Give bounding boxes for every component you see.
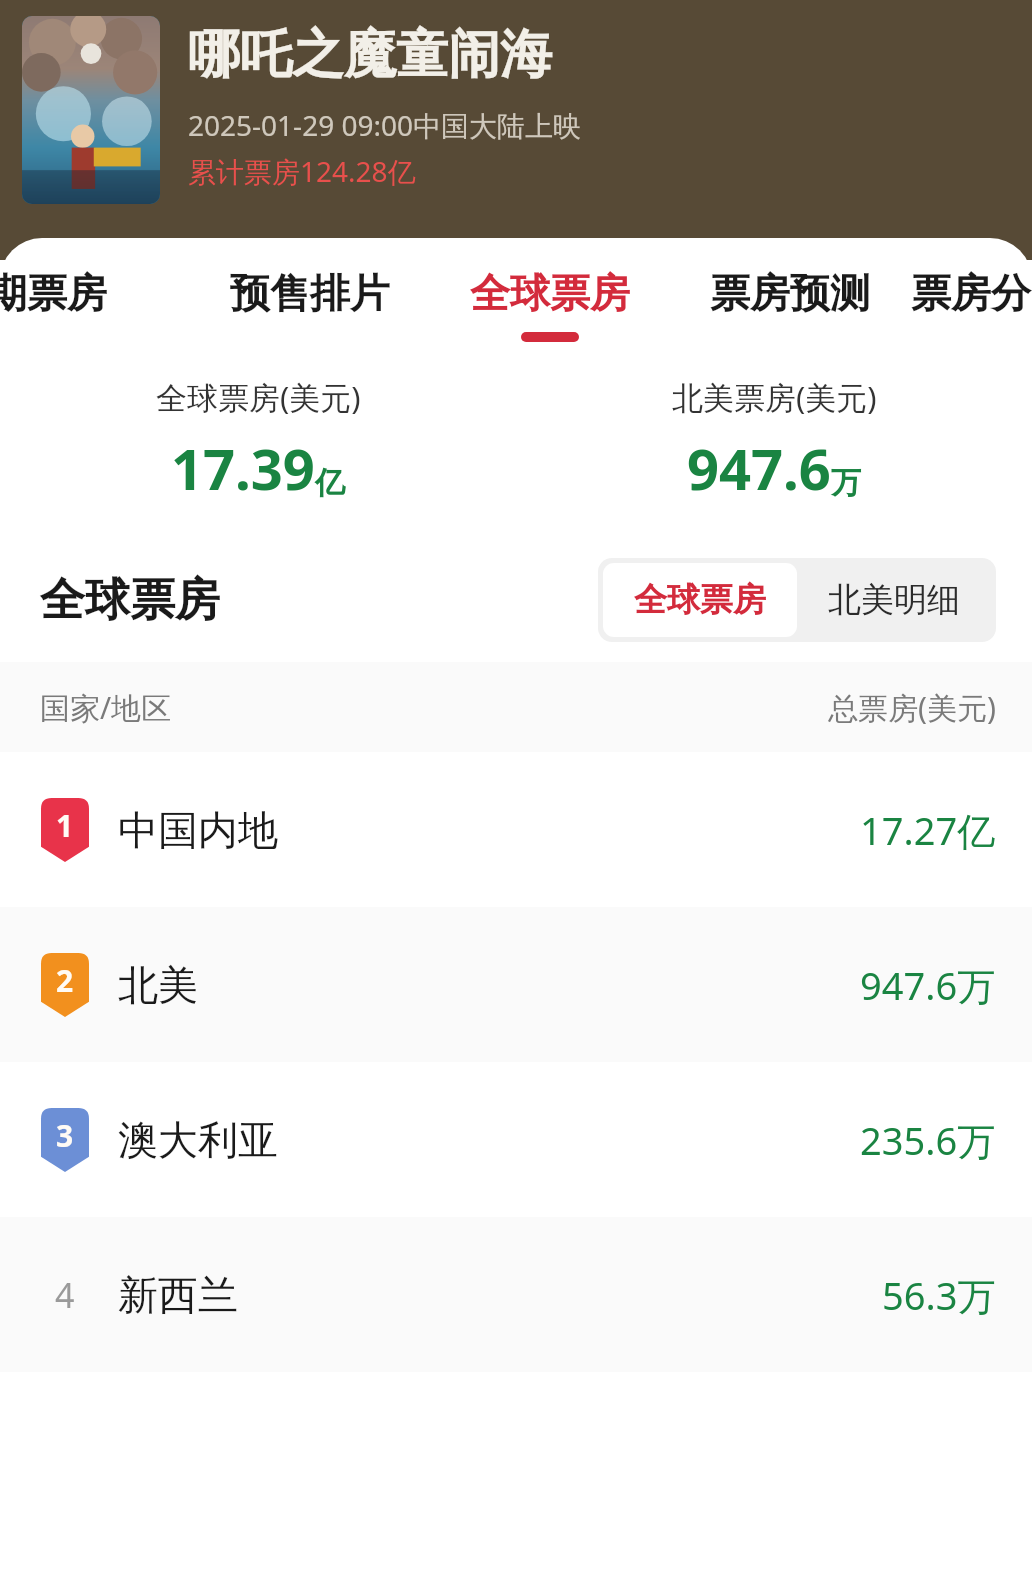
staticText: 票房分 [911,268,1031,318]
staticText: 1 [56,805,74,846]
staticText: 17.27亿 [860,804,996,856]
button[interactable]: 北美明细 [797,563,991,637]
staticText: 亿 [315,464,345,502]
staticText: 全球票房 [470,268,630,318]
staticText: 中国内地 [118,805,860,855]
button[interactable]: 哪吒之魔童闹海 [0,0,1032,215]
staticText: 2025-01-29 09:00中国大陆上映 [188,106,582,144]
staticText: 947.6 [687,430,831,506]
staticText: 新西兰 [118,1270,882,1320]
staticText: 全球票房 [634,579,766,621]
button[interactable]: 全球票房(美元) [0,376,516,506]
button[interactable]: 票房分 [910,238,1032,362]
staticText: 北美明细 [828,579,960,621]
button[interactable]: 票房预测 [670,238,910,362]
staticText: 国家/地区 [40,687,172,728]
button[interactable]: 3 [0,1062,1032,1217]
staticText: 2 [56,960,74,1001]
staticText: 预售排片 [230,268,390,318]
staticText: 全球票房 [40,572,220,629]
button[interactable]: 4 [0,1217,1032,1372]
staticText: 北美 [118,960,860,1010]
button[interactable]: 全球票房 [430,238,670,362]
staticText: 总票房(美元) [828,687,996,728]
button[interactable]: 预售排片 [190,238,430,362]
staticText: 4 [55,1272,75,1318]
button[interactable]: 1 [0,752,1032,907]
staticText: 万 [831,464,861,502]
staticText: 947.6万 [860,959,996,1011]
button[interactable]: 期票房 [0,238,142,362]
staticText: 票房预测 [710,268,870,318]
staticText: 全球票房(美元) [156,376,361,418]
button[interactable]: 2 [0,907,1032,1062]
staticText: 3 [56,1115,74,1156]
staticText: 17.39 [171,430,315,506]
staticText: 累计票房124.28亿 [188,152,416,190]
staticText: 哪吒之魔童闹海 [188,22,552,88]
staticText: 235.6万 [860,1114,996,1166]
staticText: 北美票房(美元) [672,376,877,418]
staticText: 期票房 [0,268,107,318]
staticText: 56.3万 [882,1269,996,1321]
button[interactable]: 北美票房(美元) [516,376,1032,506]
button[interactable]: 全球票房 [603,563,797,637]
staticText: 澳大利亚 [118,1115,860,1165]
